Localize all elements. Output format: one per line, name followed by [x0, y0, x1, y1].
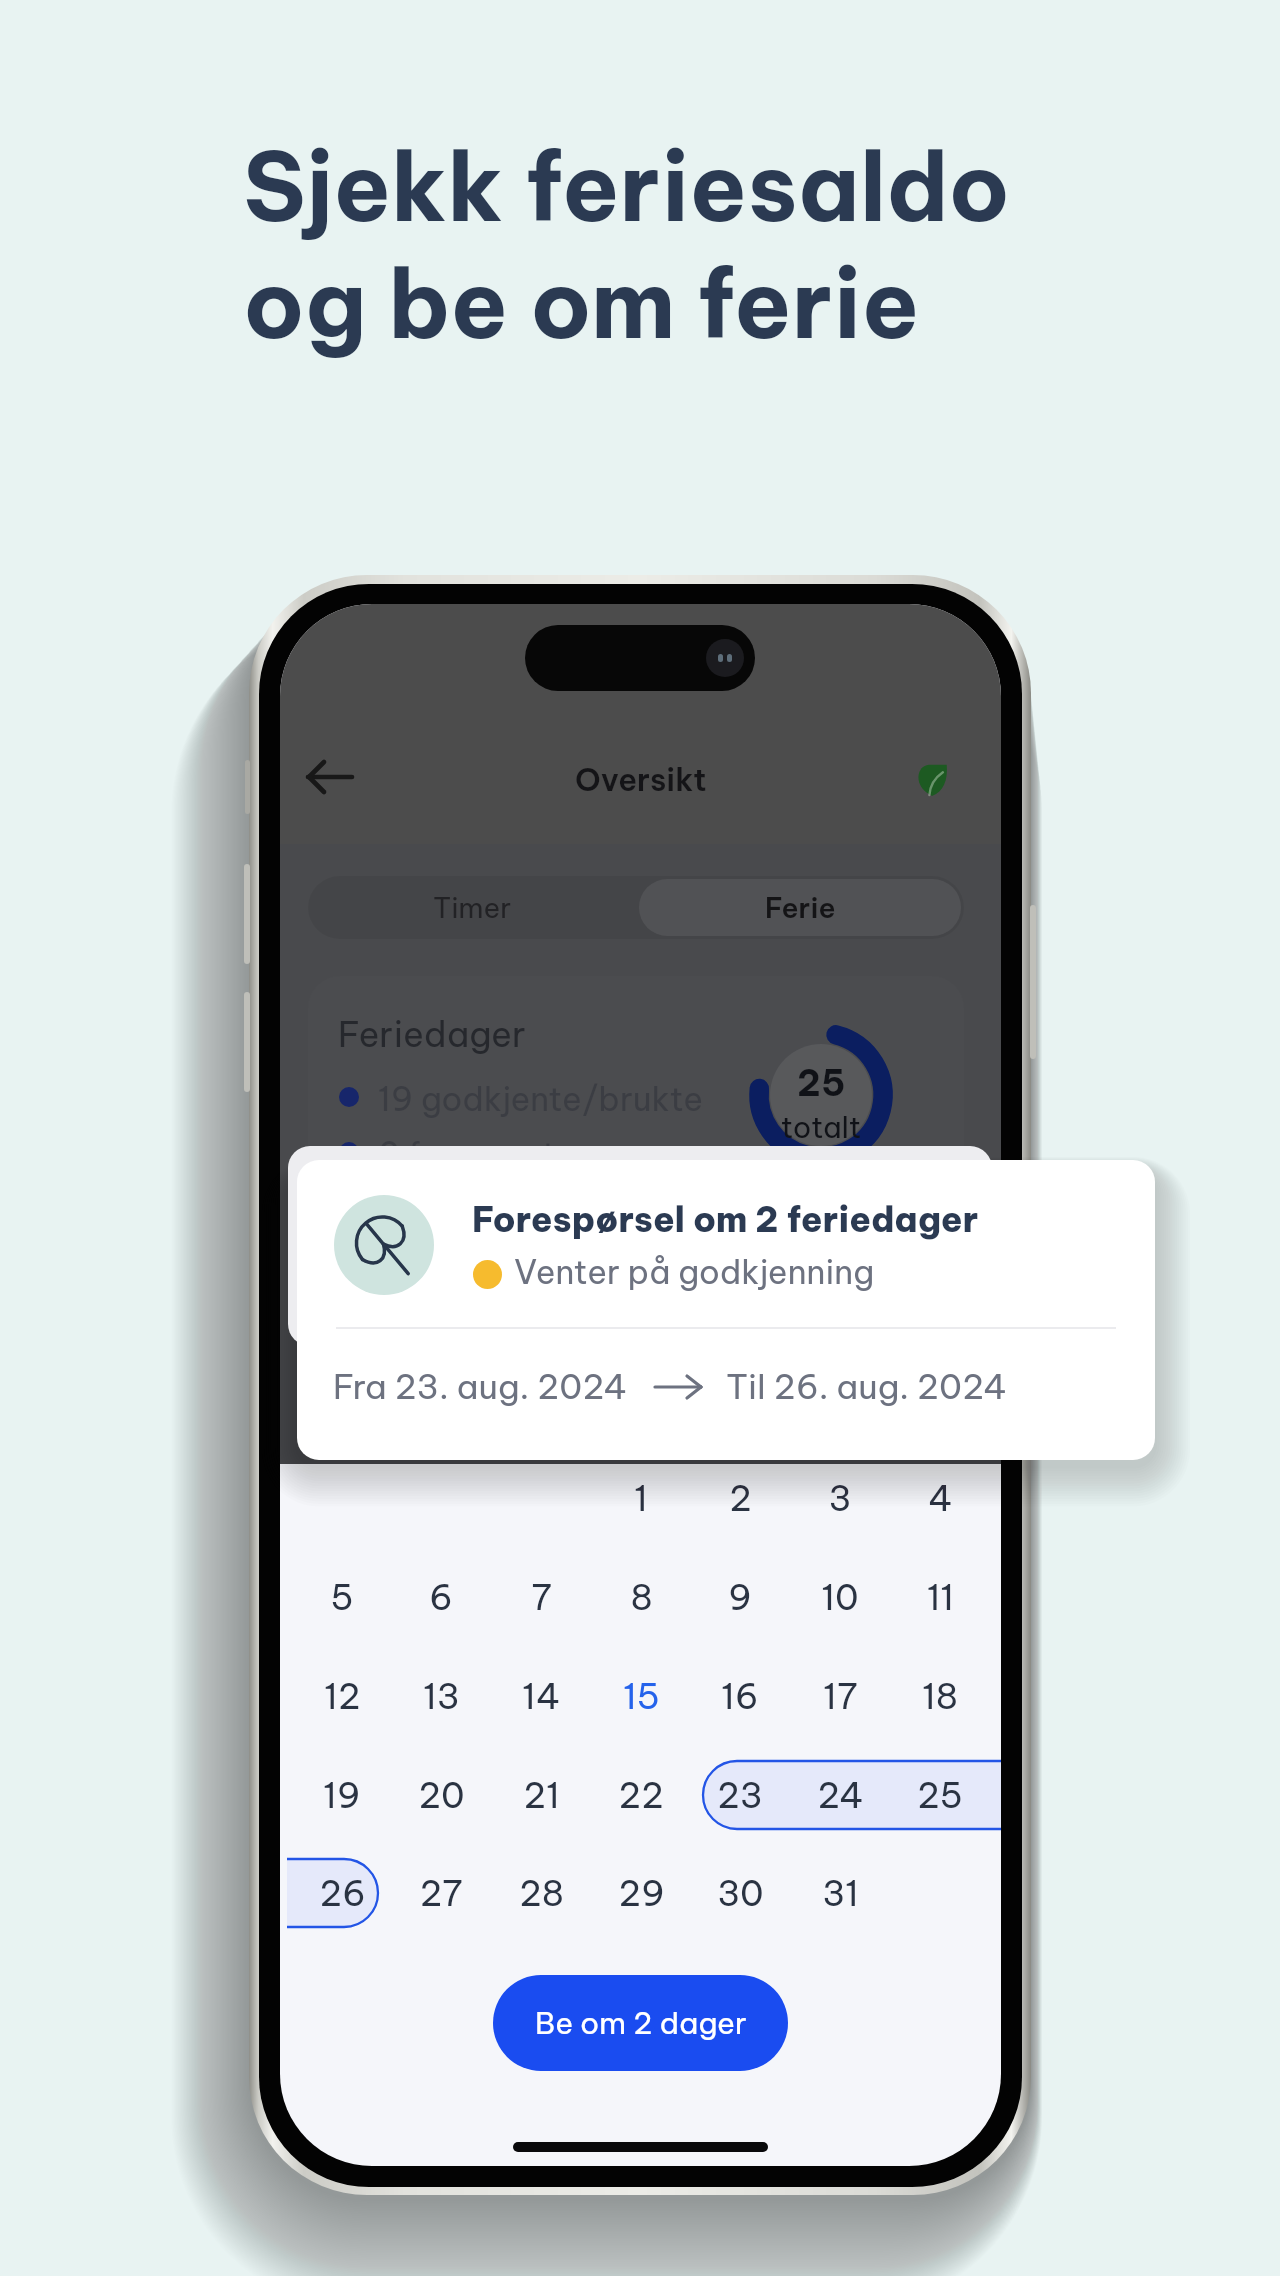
button[interactable]: 28 — [491, 1859, 591, 1927]
staticText: 14 — [522, 1674, 561, 1718]
staticText: 11 — [927, 1575, 954, 1619]
staticText: 3 — [828, 1476, 852, 1520]
staticText: Sjekk feriesaldo og be om ferie — [243, 127, 1011, 363]
staticText: 19 — [323, 1773, 361, 1817]
staticText: totalt — [781, 1109, 862, 1146]
button[interactable]: 17 — [790, 1662, 890, 1730]
button[interactable]: 18 — [890, 1662, 990, 1730]
staticText: 4 — [928, 1476, 953, 1520]
button[interactable]: 15 — [591, 1662, 691, 1730]
staticText: 28 — [519, 1871, 564, 1915]
staticText: Ferie — [765, 890, 836, 925]
button[interactable]: 19 — [292, 1761, 392, 1829]
button[interactable]: Back — [300, 746, 362, 808]
staticText: Feriedager — [338, 1012, 526, 1056]
button[interactable]: 13 — [391, 1662, 491, 1730]
button[interactable]: 7 — [491, 1563, 591, 1631]
staticText: 18 — [922, 1674, 958, 1718]
button[interactable]: 16 — [690, 1662, 790, 1730]
staticText: Fra 23. aug. 2024 — [333, 1365, 628, 1408]
staticText: 7 — [531, 1575, 552, 1619]
staticText: 6 — [429, 1575, 453, 1619]
button[interactable]: Forespørsel om 2 feriedager — [297, 1160, 1155, 1460]
button[interactable]: 6 — [391, 1563, 491, 1631]
staticText: 29 — [618, 1871, 665, 1915]
staticText: 0 forespurte — [378, 1133, 576, 1175]
button[interactable]: 25 — [890, 1761, 990, 1829]
button[interactable]: 23 — [690, 1761, 790, 1829]
staticText: Oversikt — [575, 760, 707, 799]
button[interactable]: 8 — [591, 1563, 691, 1631]
button[interactable]: 30 — [690, 1859, 790, 1927]
staticText: 10 — [821, 1575, 859, 1619]
button[interactable]: Timer — [308, 876, 636, 939]
staticText: 19 godkjente/brukte — [378, 1078, 704, 1120]
staticText: 17 — [823, 1674, 858, 1718]
staticText: 27 — [419, 1871, 463, 1915]
staticText: 2 — [729, 1476, 752, 1520]
button[interactable]: 12 — [292, 1662, 392, 1730]
staticText: Timer — [433, 890, 512, 925]
staticText: 5 — [330, 1575, 354, 1619]
button[interactable]: Be om 2 dager — [493, 1975, 788, 2071]
button[interactable]: 11 — [890, 1563, 990, 1631]
staticText: 30 — [717, 1871, 764, 1915]
button[interactable]: 22 — [591, 1761, 691, 1829]
staticText: 26 — [319, 1871, 366, 1915]
button[interactable]: 27 — [391, 1859, 491, 1927]
staticText: Til 26. aug. 2024 — [726, 1365, 1008, 1408]
staticText: 31 — [822, 1871, 859, 1915]
button[interactable]: 5 — [292, 1563, 392, 1631]
staticText: Forespørsel om 2 feriedager — [472, 1197, 979, 1241]
staticText: 20 — [418, 1773, 465, 1817]
staticText: 21 — [523, 1773, 560, 1817]
staticText: 1 — [634, 1476, 648, 1520]
button[interactable]: 24 — [790, 1761, 890, 1829]
button[interactable]: 2 — [690, 1464, 790, 1532]
staticText: 12 — [324, 1674, 361, 1718]
button[interactable]: 29 — [591, 1859, 691, 1927]
staticText: 25 — [797, 1060, 846, 1106]
button[interactable]: Eco — [900, 748, 964, 812]
staticText: 25 — [917, 1773, 963, 1817]
button[interactable]: 3 — [790, 1464, 890, 1532]
button[interactable]: 20 — [391, 1761, 491, 1829]
button[interactable]: 1 — [591, 1464, 691, 1532]
staticText: 9 — [728, 1575, 752, 1619]
staticText: Be om 2 dager — [535, 2004, 747, 2042]
button[interactable]: 4 — [890, 1464, 990, 1532]
staticText: 15 — [623, 1674, 660, 1718]
button[interactable]: 31 — [790, 1859, 890, 1927]
staticText: 22 — [618, 1773, 664, 1817]
button[interactable]: 9 — [690, 1563, 790, 1631]
button[interactable]: 14 — [491, 1662, 591, 1730]
staticText: 24 — [817, 1773, 864, 1817]
staticText: 16 — [721, 1674, 759, 1718]
staticText: 23 — [717, 1773, 763, 1817]
staticText: 13 — [423, 1674, 460, 1718]
button[interactable]: 21 — [491, 1761, 591, 1829]
staticText: Venter på godkjenning — [514, 1251, 875, 1293]
button[interactable]: 10 — [790, 1563, 890, 1631]
button[interactable]: Ferie — [639, 879, 961, 936]
button[interactable]: 26 — [292, 1859, 392, 1927]
staticText: 8 — [630, 1575, 653, 1619]
